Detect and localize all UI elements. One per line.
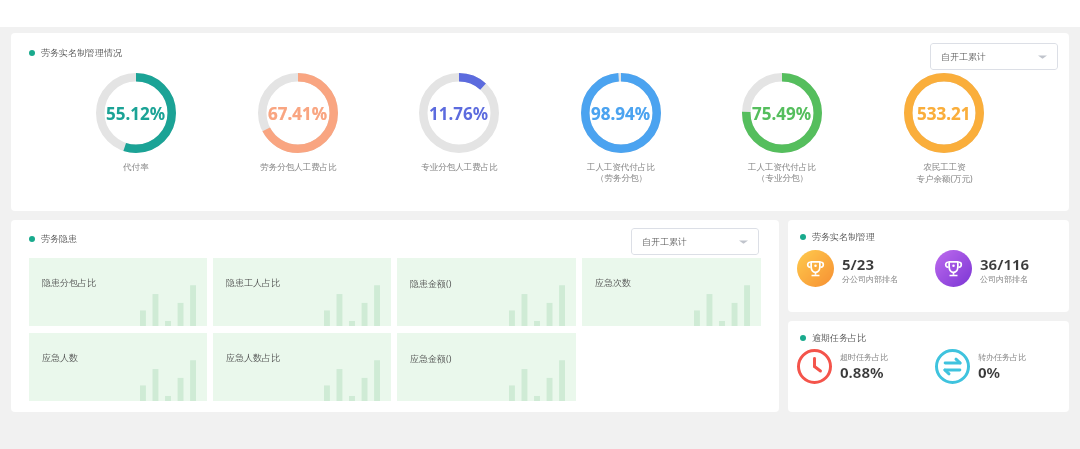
staticText: 分公司内部排名	[842, 274, 898, 284]
staticText: 533.21	[917, 102, 971, 125]
button[interactable]: Trophy	[935, 250, 1063, 287]
staticText: 隐患工人占比	[226, 277, 280, 288]
staticText: 公司内部排名	[980, 274, 1028, 284]
button[interactable]: 应急人数占比	[213, 333, 391, 401]
button[interactable]: Transferred tasks	[935, 349, 1063, 384]
staticText: 自开工累计	[941, 51, 986, 62]
staticText: 专业分包人工费占比	[421, 162, 498, 173]
staticText: 应急金额()	[410, 352, 452, 364]
staticText: 超时任务占比	[840, 352, 888, 362]
staticText: 劳务实名制管理情况	[41, 47, 122, 58]
staticText: 55.12%	[106, 102, 166, 125]
staticText: 75.49%	[752, 102, 812, 125]
staticText: 工人工资代付占比	[587, 162, 655, 173]
staticText: 0%	[978, 362, 1001, 382]
staticText: 5/23	[842, 254, 874, 274]
staticText: 逾期任务占比	[812, 332, 866, 343]
staticText: 劳务隐患	[41, 233, 77, 244]
staticText: 0.88%	[840, 362, 884, 382]
staticText: 应急人数占比	[226, 352, 280, 363]
staticText: 自开工累计	[642, 236, 687, 247]
other: Trophy	[806, 259, 825, 278]
staticText: 代付率	[123, 162, 149, 173]
staticText: 劳务分包人工费占比	[260, 162, 337, 173]
button[interactable]: 自开工累计	[930, 43, 1058, 70]
other: Transferred tasks	[935, 349, 970, 384]
staticText: 67.41%	[268, 102, 328, 125]
staticText: 隐患分包占比	[42, 277, 96, 288]
staticText: 劳务实名制管理	[812, 231, 875, 242]
button[interactable]: 隐患工人占比	[213, 258, 391, 326]
button[interactable]: 应急次数	[582, 258, 761, 326]
staticText: 专户余额(万元)	[916, 173, 973, 185]
other: Overtime tasks	[797, 349, 832, 384]
staticText: 隐患金额()	[410, 277, 452, 289]
staticText: （劳务分包）	[596, 173, 647, 184]
button[interactable]: 自开工累计	[631, 228, 759, 255]
button[interactable]: Overtime tasks	[797, 349, 925, 384]
staticText: 转办任务占比	[978, 352, 1026, 362]
staticText: （专业分包）	[757, 173, 808, 184]
button[interactable]: 应急人数	[29, 333, 207, 401]
staticText: 应急人数	[42, 352, 78, 363]
staticText: 农民工工资	[923, 162, 966, 173]
staticText: 应急次数	[595, 277, 631, 288]
button[interactable]: 应急金额()	[397, 333, 576, 401]
staticText: 11.76%	[429, 102, 489, 125]
staticText: 36/116	[980, 254, 1030, 274]
button[interactable]: Trophy	[797, 250, 925, 287]
button[interactable]: 隐患金额()	[397, 258, 576, 326]
button[interactable]: 隐患分包占比	[29, 258, 207, 326]
staticText: 工人工资代付占比	[748, 162, 816, 173]
other: Trophy	[944, 259, 963, 278]
staticText: 98.94%	[591, 102, 651, 125]
